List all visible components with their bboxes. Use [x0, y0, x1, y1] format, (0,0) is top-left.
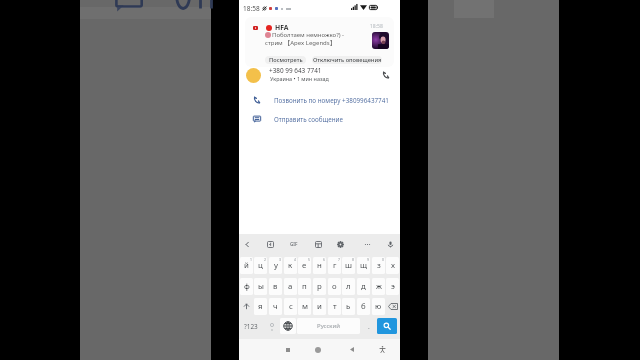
- staticText: Отключить оповещения: [313, 56, 382, 64]
- button[interactable]: х: [386, 257, 399, 274]
- staticText: ф: [244, 281, 250, 292]
- button[interactable]: ч: [269, 298, 282, 315]
- staticText: т: [333, 301, 337, 312]
- staticText: Отправить сообщение: [274, 115, 343, 124]
- button[interactable]: ж: [372, 278, 385, 295]
- button[interactable]: Backspace: [385, 298, 400, 315]
- button[interactable]: Change language: [280, 318, 296, 334]
- staticText: с: [289, 301, 293, 312]
- staticText: г: [333, 260, 337, 271]
- button[interactable]: г: [328, 257, 341, 274]
- button[interactable]: щ: [357, 257, 370, 274]
- staticText: к: [288, 260, 293, 271]
- button[interactable]: й: [240, 257, 253, 274]
- button[interactable]: Call: [381, 70, 391, 80]
- staticText: стрим 【Apex Legends】: [265, 39, 336, 47]
- button[interactable]: ь: [342, 298, 355, 315]
- staticText: +380 99 643 7741: [269, 66, 322, 75]
- staticText: 7: [338, 257, 340, 262]
- button[interactable]: ц: [254, 257, 267, 274]
- staticText: я: [258, 301, 263, 312]
- staticText: и: [317, 301, 322, 312]
- staticText: п: [302, 281, 307, 292]
- button[interactable]: о: [328, 278, 341, 295]
- button[interactable]: ?123: [240, 318, 262, 335]
- button[interactable]: HFA: [245, 17, 394, 67]
- staticText: ы: [258, 281, 264, 292]
- staticText: Поболтаем немножко?) -: [272, 31, 345, 39]
- button[interactable]: .: [360, 318, 377, 335]
- button[interactable]: Позвонить по номеру +380996437741: [239, 93, 400, 107]
- button[interactable]: Shift: [239, 298, 254, 315]
- button[interactable]: ш: [342, 257, 355, 274]
- button[interactable]: в: [269, 278, 282, 295]
- button[interactable]: Back: [237, 236, 257, 252]
- staticText: 0: [382, 257, 384, 262]
- button[interactable]: а: [284, 278, 297, 295]
- staticText: 5: [308, 257, 310, 262]
- staticText: у: [274, 260, 278, 271]
- button[interactable]: GIF: [284, 236, 304, 252]
- staticText: Позвонить по номеру +380996437741: [274, 96, 389, 105]
- button[interactable]: Search: [377, 318, 397, 334]
- button[interactable]: Home: [301, 339, 335, 360]
- button[interactable]: р: [313, 278, 326, 295]
- button[interactable]: п: [298, 278, 311, 295]
- button[interactable]: Settings: [330, 236, 350, 252]
- staticText: н: [317, 260, 322, 271]
- staticText: ю: [375, 301, 382, 312]
- staticText: 18:58: [243, 4, 260, 13]
- button[interactable]: Back: [335, 339, 369, 360]
- button[interactable]: з: [372, 257, 385, 274]
- button[interactable]: м: [298, 298, 311, 315]
- staticText: х: [391, 260, 395, 271]
- button[interactable]: Посмотреть: [265, 56, 306, 64]
- button[interactable]: н: [313, 257, 326, 274]
- button[interactable]: б: [357, 298, 370, 315]
- button[interactable]: д: [357, 278, 370, 295]
- staticText: ц: [258, 260, 263, 271]
- staticText: Посмотреть: [269, 56, 303, 64]
- staticText: 4: [294, 257, 296, 262]
- button[interactable]: т: [328, 298, 341, 315]
- button[interactable]: у: [269, 257, 282, 274]
- staticText: м: [302, 301, 308, 312]
- button[interactable]: Отключить оповещения: [312, 56, 382, 64]
- button[interactable]: э: [386, 278, 399, 295]
- staticText: HFA: [275, 23, 289, 32]
- button[interactable]: Clipboard: [308, 236, 328, 252]
- button[interactable]: Русский: [297, 318, 360, 334]
- staticText: 1: [250, 257, 252, 262]
- button[interactable]: е: [298, 257, 311, 274]
- button[interactable]: Accessibility: [369, 339, 395, 360]
- button[interactable]: ф: [240, 278, 253, 295]
- button[interactable]: Отправить сообщение: [239, 112, 400, 126]
- staticText: Украина • 1 мин назад: [270, 75, 329, 82]
- staticText: ь: [346, 301, 351, 312]
- button[interactable]: я: [254, 298, 267, 315]
- staticText: GIF: [290, 241, 298, 247]
- button[interactable]: л: [342, 278, 355, 295]
- staticText: ?123: [244, 322, 258, 331]
- staticText: 9: [367, 257, 369, 262]
- button[interactable]: ы: [254, 278, 267, 295]
- staticText: о: [332, 281, 337, 292]
- button[interactable]: ю: [372, 298, 385, 315]
- staticText: 2: [264, 257, 266, 262]
- button[interactable]: Emoji: [263, 318, 280, 335]
- button[interactable]: и: [313, 298, 326, 315]
- staticText: б: [361, 301, 366, 312]
- staticText: ш: [345, 260, 352, 271]
- staticText: р: [317, 281, 322, 292]
- button[interactable]: Recents: [275, 339, 301, 360]
- button[interactable]: с: [284, 298, 297, 315]
- button[interactable]: More: [357, 236, 377, 252]
- staticText: щ: [360, 260, 367, 271]
- staticText: е: [302, 260, 307, 271]
- button[interactable]: Stickers: [260, 236, 280, 252]
- staticText: .: [368, 322, 370, 331]
- button[interactable]: к: [284, 257, 297, 274]
- staticText: ч: [273, 301, 278, 312]
- staticText: 8: [352, 257, 354, 262]
- button[interactable]: Voice input: [380, 236, 400, 252]
